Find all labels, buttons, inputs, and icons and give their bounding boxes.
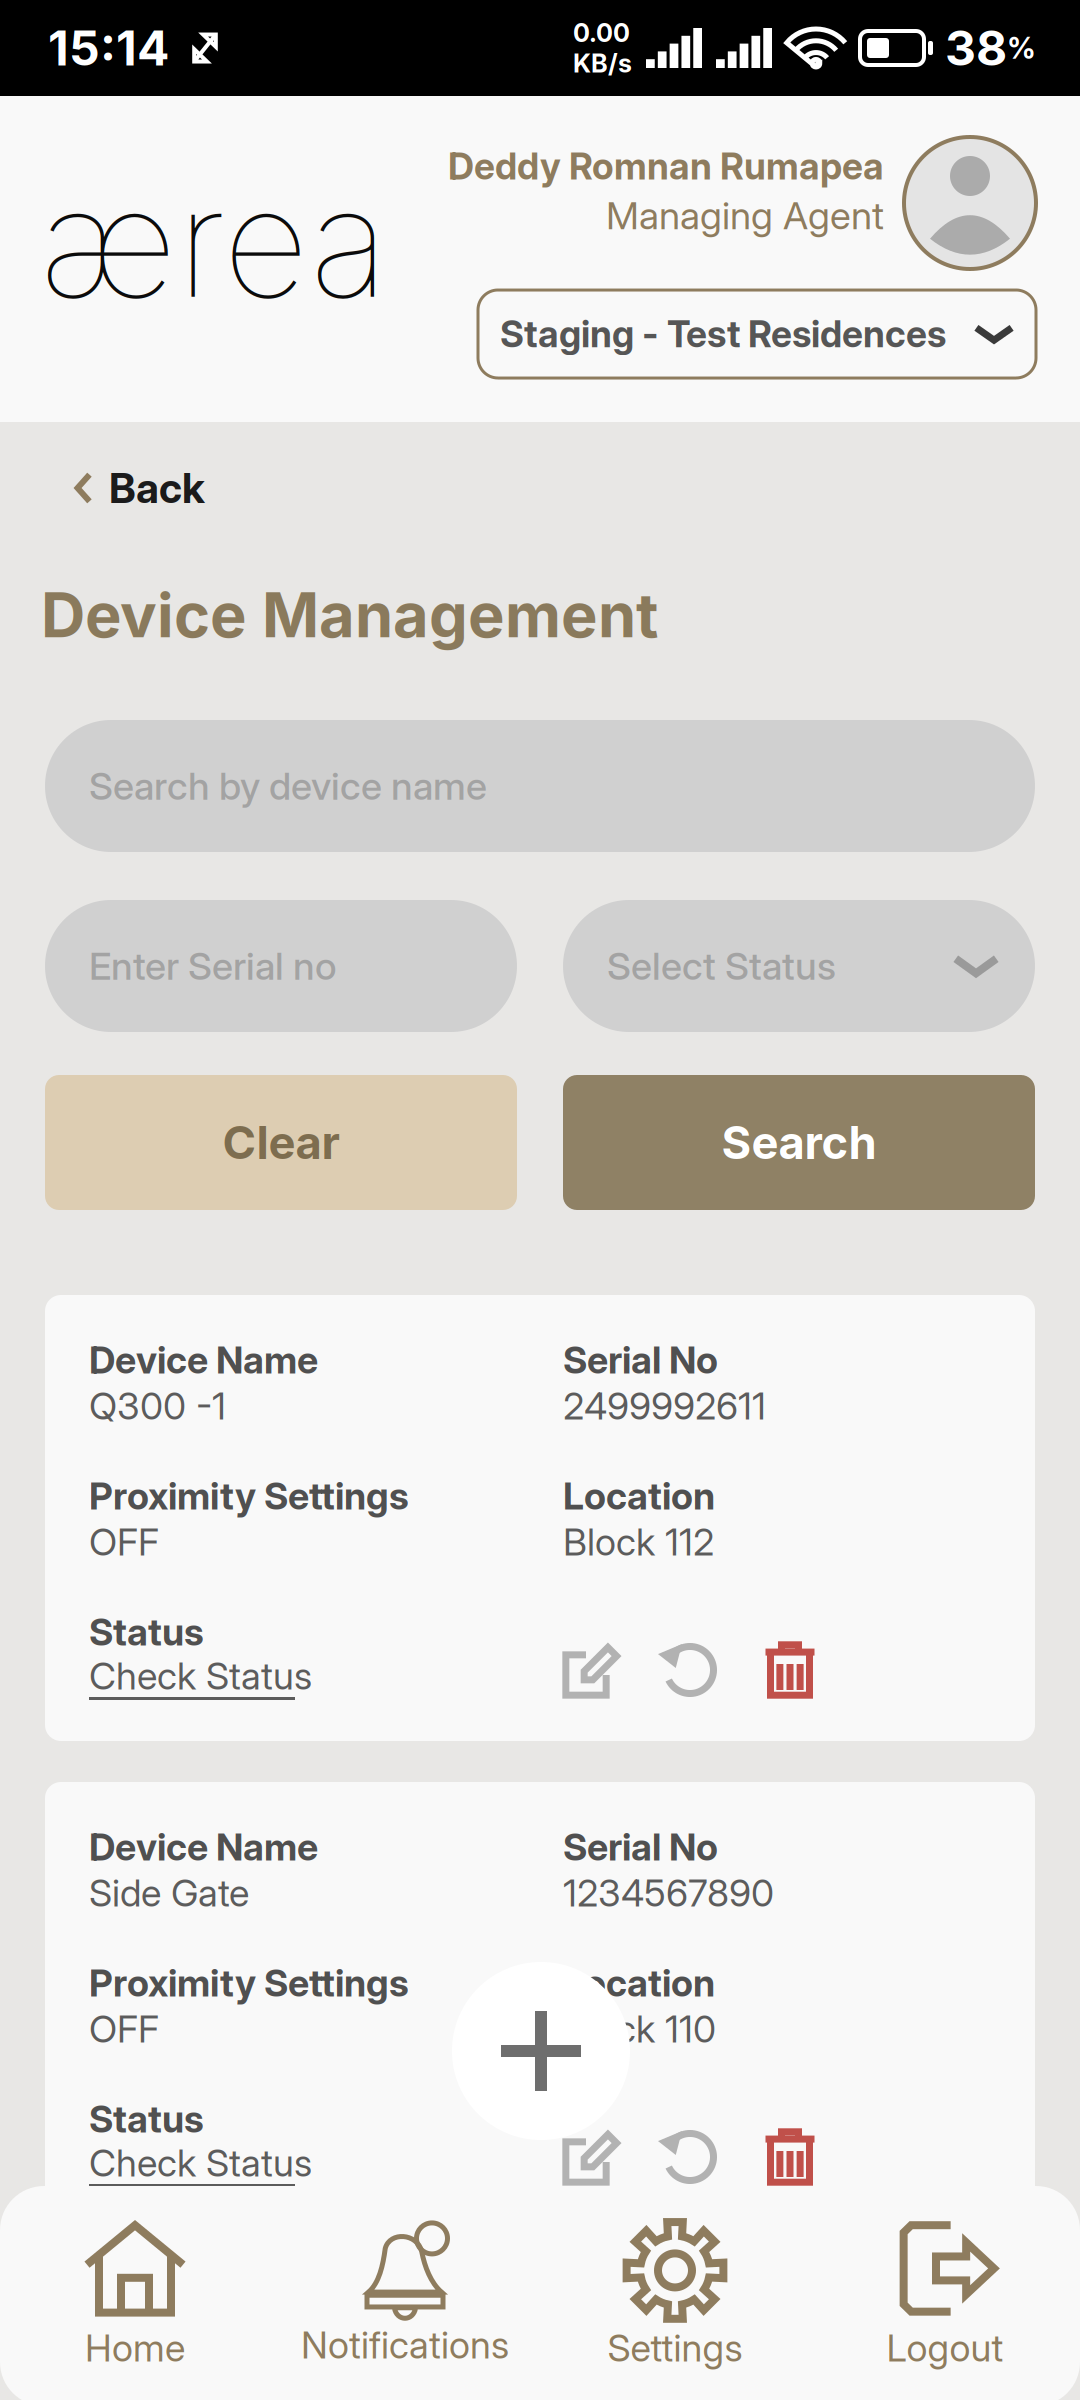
staticText: % — [1007, 30, 1036, 66]
staticText: Enter Serial no — [89, 943, 337, 989]
staticText: 1234567890 — [563, 1870, 774, 1916]
staticText: Status — [89, 1609, 204, 1655]
staticText: Clear — [222, 1115, 339, 1170]
staticText: OFF — [89, 2006, 159, 2052]
button[interactable]: Settings — [540, 2211, 810, 2381]
staticText: Serial No — [563, 1824, 718, 1870]
staticText: Proximity Settings — [89, 1473, 409, 1519]
button[interactable]: Edit — [549, 1609, 631, 1701]
staticText: ærea — [40, 152, 388, 333]
staticText: 15:14 — [48, 19, 169, 77]
staticText: Logout — [886, 2325, 1003, 2371]
staticText: Staging - Test Residences — [500, 312, 946, 356]
button[interactable]: Reset — [649, 1609, 731, 1701]
staticText: Q300 -1 — [89, 1383, 226, 1429]
staticText: Settings — [607, 2325, 742, 2371]
staticText: Notifications — [301, 2322, 509, 2368]
staticText: 0.00 — [573, 17, 630, 48]
button[interactable]: Notifications — [270, 2211, 540, 2381]
button[interactable]: Back — [0, 442, 360, 534]
button[interactable]: Add device — [452, 1962, 630, 2140]
staticText: Home — [85, 2325, 185, 2371]
staticText: Device Name — [89, 1337, 318, 1383]
staticText: Block 112 — [563, 1519, 714, 1565]
staticText: Block 110 — [563, 2006, 716, 2052]
button[interactable]: Home — [0, 2211, 270, 2381]
staticText: Status — [89, 2096, 204, 2142]
staticText: Location — [563, 1960, 715, 2006]
button[interactable]: Enter Serial no — [45, 900, 517, 1032]
staticText: Location — [563, 1473, 715, 1519]
button[interactable]: Search — [563, 1075, 1035, 1210]
button[interactable]: Edit — [549, 2096, 631, 2188]
staticText: 2499992611 — [563, 1383, 766, 1429]
button[interactable]: Logout — [810, 2211, 1080, 2381]
staticText: Search — [721, 1115, 876, 1170]
staticText: Device Management — [41, 578, 658, 652]
staticText: Deddy Romnan Rumapea — [448, 144, 884, 188]
staticText: 38 — [945, 19, 1007, 77]
button[interactable]: Reset — [649, 2096, 731, 2188]
staticText: Device Name — [89, 1824, 318, 1870]
button[interactable]: Delete — [749, 2096, 831, 2188]
staticText: KB/s — [573, 48, 632, 79]
staticText: Check Status — [89, 1653, 312, 1699]
staticText: Managing Agent — [606, 192, 884, 238]
staticText: Side Gate — [89, 1870, 249, 1916]
button[interactable]: Search by device name — [45, 720, 1035, 852]
staticText: Back — [109, 463, 205, 513]
button[interactable]: Staging - Test Residences — [478, 290, 1036, 378]
staticText: Check Status — [89, 2140, 312, 2186]
button[interactable]: Delete — [749, 1609, 831, 1701]
staticText: OFF — [89, 1519, 159, 1565]
staticText: Proximity Settings — [89, 1960, 409, 2006]
button[interactable]: Clear — [45, 1075, 517, 1210]
staticText: Search by device name — [89, 763, 487, 809]
staticText: Serial No — [563, 1337, 718, 1383]
button[interactable]: Select Status — [563, 900, 1035, 1032]
staticText: Select Status — [607, 943, 836, 989]
